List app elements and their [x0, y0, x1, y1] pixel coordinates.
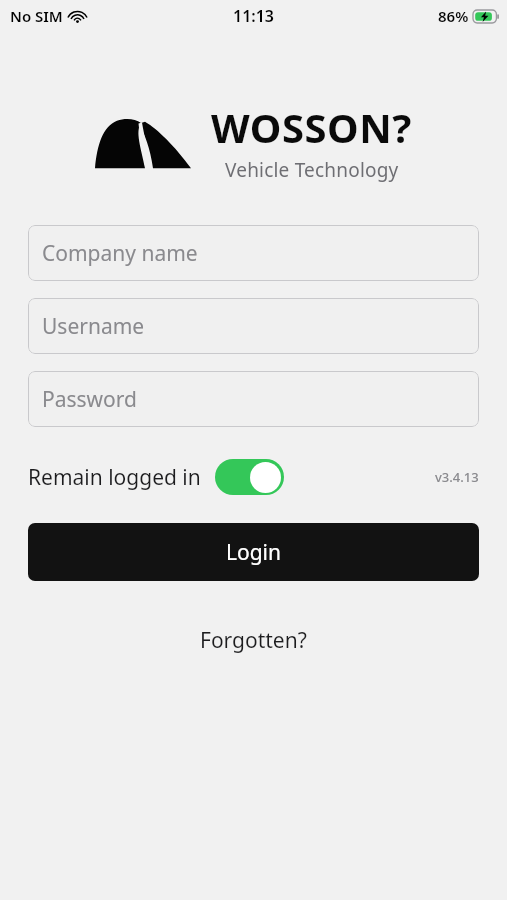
staticText: Company name — [42, 239, 198, 268]
staticText: 86% — [438, 6, 469, 26]
button[interactable]: Username — [28, 298, 479, 354]
button[interactable]: Login — [28, 523, 479, 581]
button[interactable]: Password — [28, 371, 479, 427]
button[interactable]: Remain logged in toggle — [215, 459, 284, 495]
staticText: Password — [42, 385, 137, 414]
staticText: WOSSON? — [211, 100, 412, 154]
staticText: No SIM — [10, 6, 63, 26]
button[interactable]: Company name — [28, 225, 479, 281]
staticText: Forgotten? — [200, 626, 307, 655]
staticText: 11:13 — [233, 5, 275, 27]
staticText: Username — [42, 312, 145, 341]
button[interactable]: Forgotten? — [182, 619, 325, 662]
staticText: v3.4.13 — [435, 468, 479, 486]
button[interactable]: Remain logged in — [28, 459, 284, 495]
staticText: Remain logged in — [28, 463, 201, 492]
staticText: Login — [226, 538, 282, 567]
staticText: Vehicle Technology — [225, 157, 399, 183]
